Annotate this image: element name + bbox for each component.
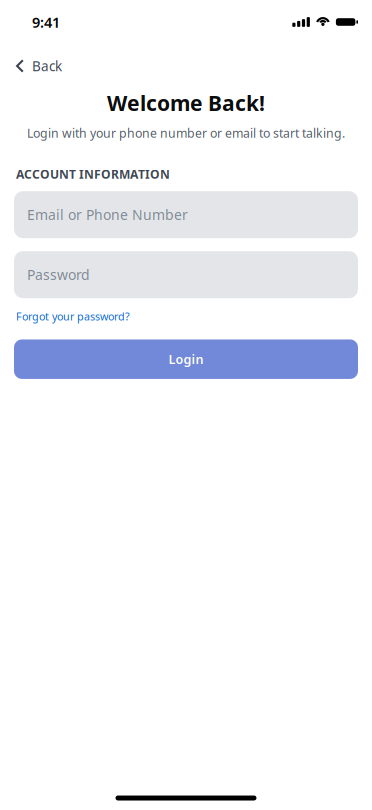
button[interactable]: Email or Phone Number — [14, 191, 358, 238]
button[interactable]: Password — [14, 251, 358, 298]
button[interactable]: Login — [14, 339, 358, 379]
staticText: Login — [168, 351, 203, 367]
staticText: 9:41 — [32, 12, 60, 32]
staticText: Password — [27, 265, 90, 284]
staticText: Welcome Back! — [107, 89, 265, 117]
staticText: ACCOUNT INFORMATION — [16, 166, 170, 182]
staticText: Email or Phone Number — [27, 205, 188, 224]
staticText: Forgot your password? — [16, 309, 130, 323]
staticText: Back — [32, 57, 62, 75]
button[interactable]: Back — [16, 57, 62, 75]
button[interactable]: Forgot your password? — [16, 309, 130, 323]
staticText: Login with your phone number or email to… — [27, 125, 345, 141]
